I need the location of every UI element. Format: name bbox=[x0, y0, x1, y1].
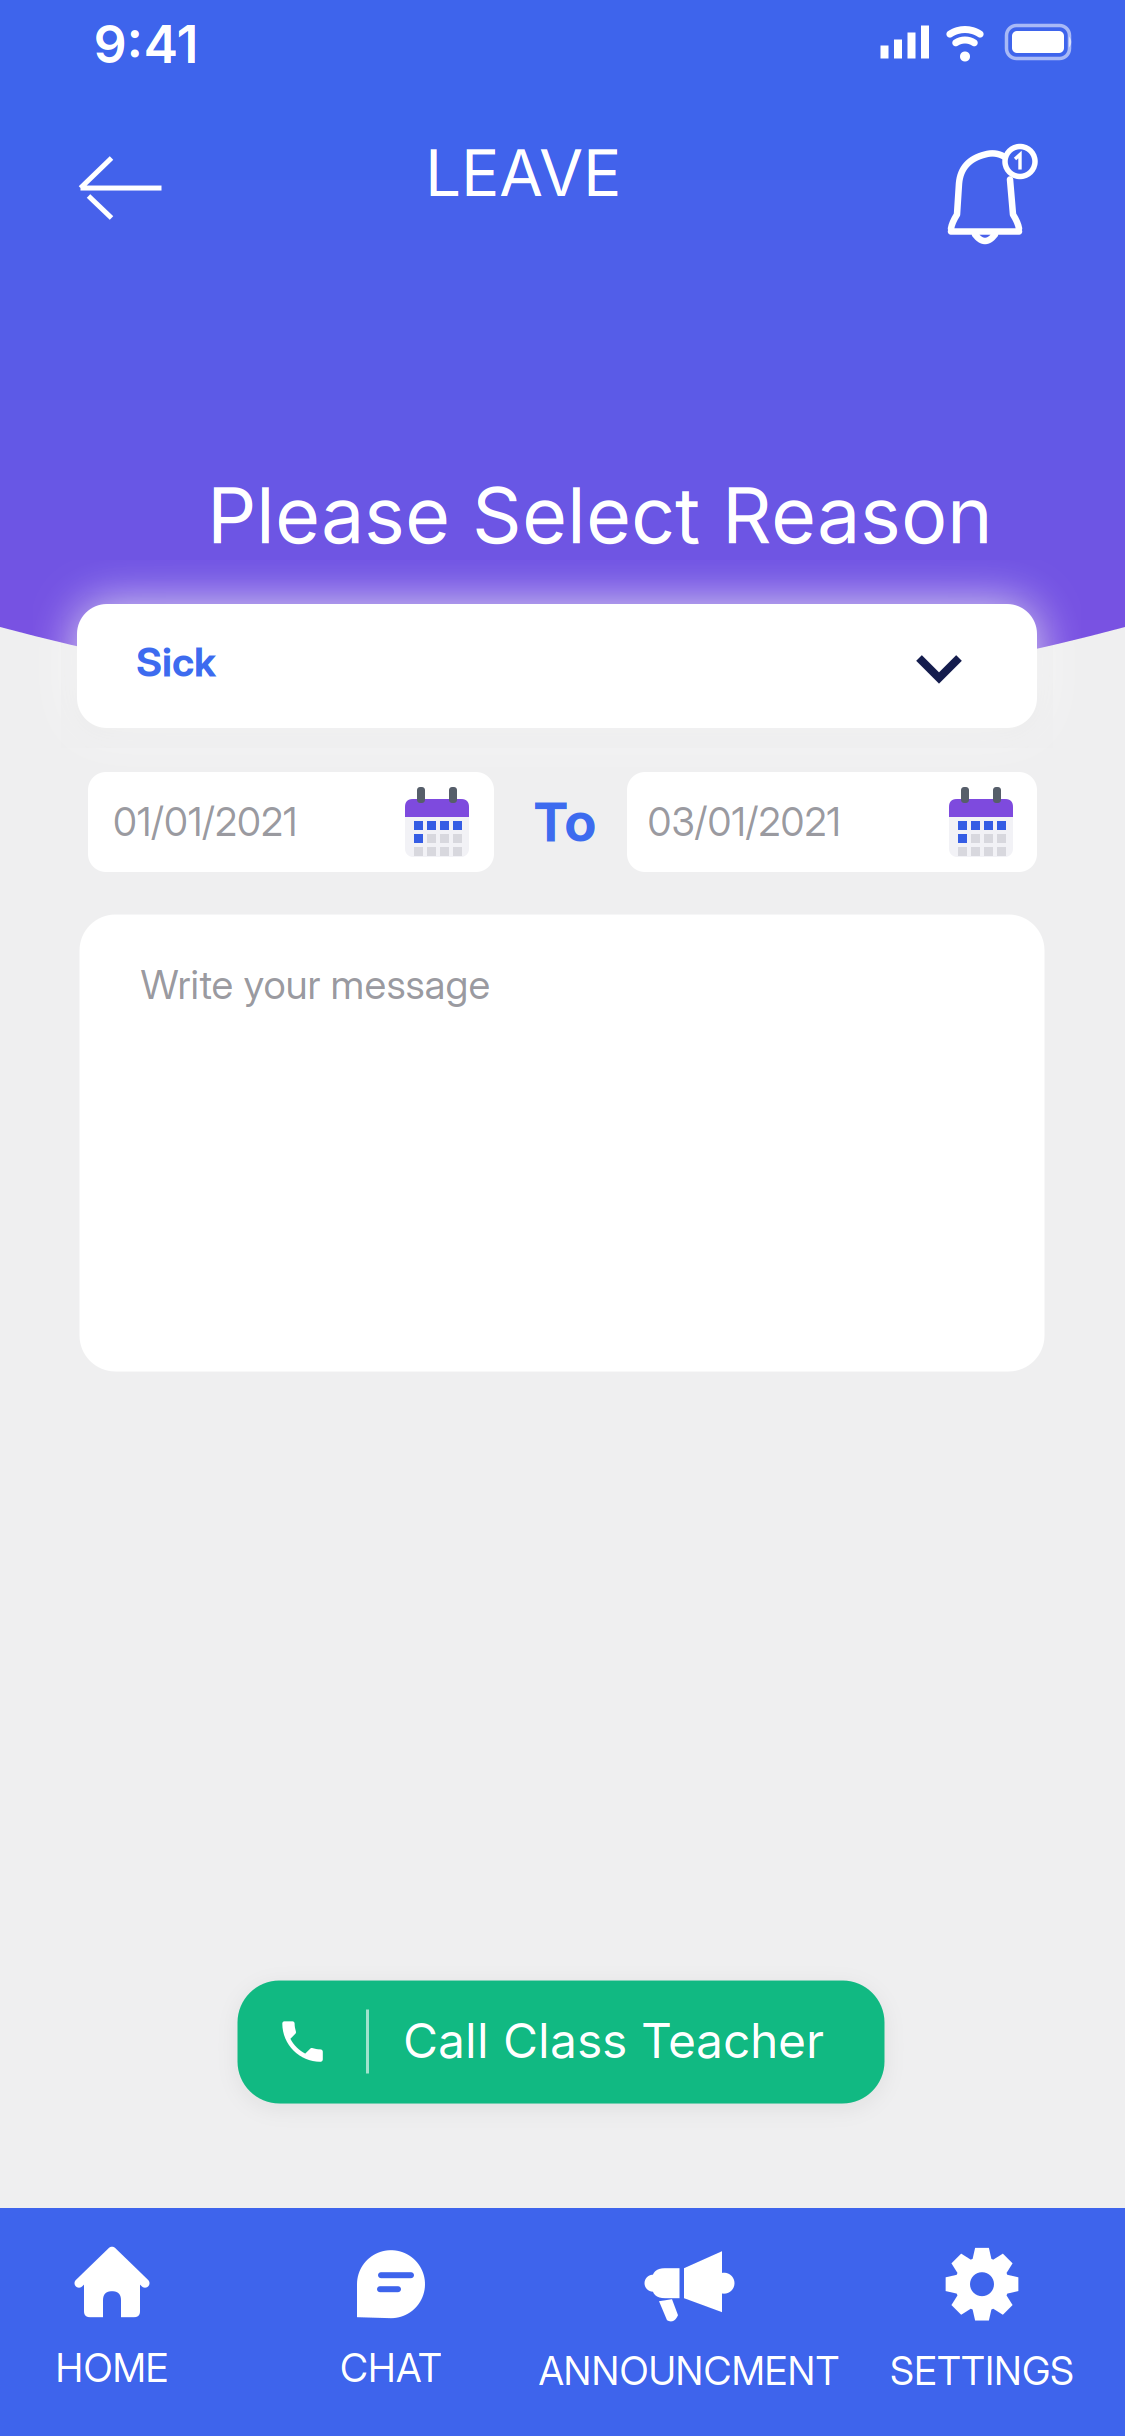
button[interactable]: Notifications bbox=[941, 127, 1045, 256]
staticText: 03/01/2021 bbox=[647, 799, 840, 845]
staticText: To bbox=[533, 790, 597, 853]
button[interactable]: End date bbox=[627, 772, 1037, 872]
staticText: Write your message bbox=[140, 961, 490, 1008]
button[interactable]: Start date bbox=[88, 772, 494, 872]
staticText: 9:41 bbox=[93, 13, 198, 75]
staticText: Call Class Teacher bbox=[403, 2012, 824, 2069]
staticText: 01/01/2021 bbox=[113, 799, 297, 845]
staticText: CHAT bbox=[340, 2345, 442, 2391]
button[interactable]: Call Class Teacher bbox=[237, 1980, 884, 2103]
staticText: HOME bbox=[55, 2345, 168, 2391]
staticText: LEAVE bbox=[425, 135, 621, 211]
button[interactable]: SETTINGS bbox=[890, 2246, 1074, 2394]
button[interactable]: Back bbox=[68, 147, 173, 229]
button[interactable]: CHAT bbox=[340, 2249, 442, 2391]
staticText: Please Select Reason bbox=[207, 469, 993, 561]
staticText: SETTINGS bbox=[890, 2348, 1074, 2394]
button[interactable]: Write your message bbox=[79, 914, 1044, 1371]
staticText: Sick bbox=[136, 638, 216, 686]
button[interactable]: HOME bbox=[55, 2249, 168, 2391]
staticText: ANNOUNCMENT bbox=[538, 2348, 839, 2394]
button[interactable]: Sick bbox=[77, 604, 1037, 728]
button[interactable]: ANNOUNCMENT bbox=[538, 2246, 839, 2394]
